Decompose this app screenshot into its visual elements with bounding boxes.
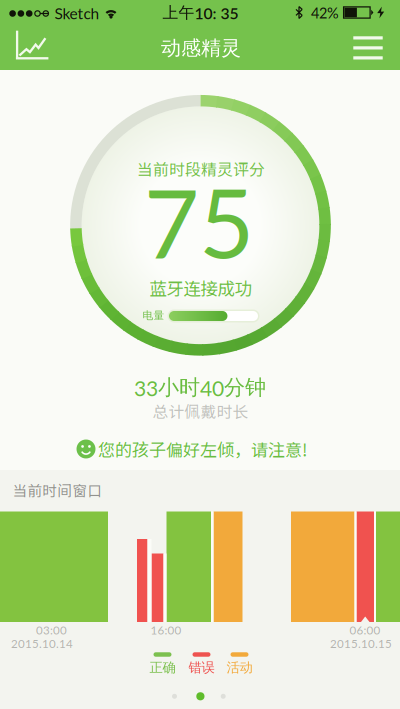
- staticText: Sketch: [54, 4, 99, 22]
- staticText: 当前时间窗口: [12, 479, 102, 500]
- staticText: 上午10: 35: [162, 3, 238, 23]
- staticText: 您的孩子偏好左倾，请注意!: [98, 437, 308, 461]
- staticText: 42%: [311, 4, 339, 21]
- staticText: 蓝牙连接成功: [149, 275, 251, 301]
- staticText: 75: [144, 164, 254, 279]
- staticText: 当前时段精灵评分: [137, 157, 265, 180]
- staticText: 33小时40分钟: [134, 374, 266, 401]
- staticText: 错误: [188, 659, 214, 676]
- staticText: 电量: [142, 309, 164, 322]
- button[interactable]: Menu: [352, 36, 385, 59]
- staticText: 活动: [226, 659, 252, 676]
- button[interactable]: History chart: [16, 31, 49, 60]
- staticText: 2015.10.14: [11, 636, 73, 650]
- staticText: 总计佩戴时长: [152, 400, 248, 422]
- staticText: 2015.10.15: [330, 636, 392, 650]
- staticText: 动感精灵: [161, 36, 241, 60]
- staticText: 03:00: [36, 623, 67, 637]
- staticText: 16:00: [150, 623, 181, 637]
- staticText: 正确: [149, 659, 175, 676]
- staticText: 06:00: [349, 623, 380, 637]
